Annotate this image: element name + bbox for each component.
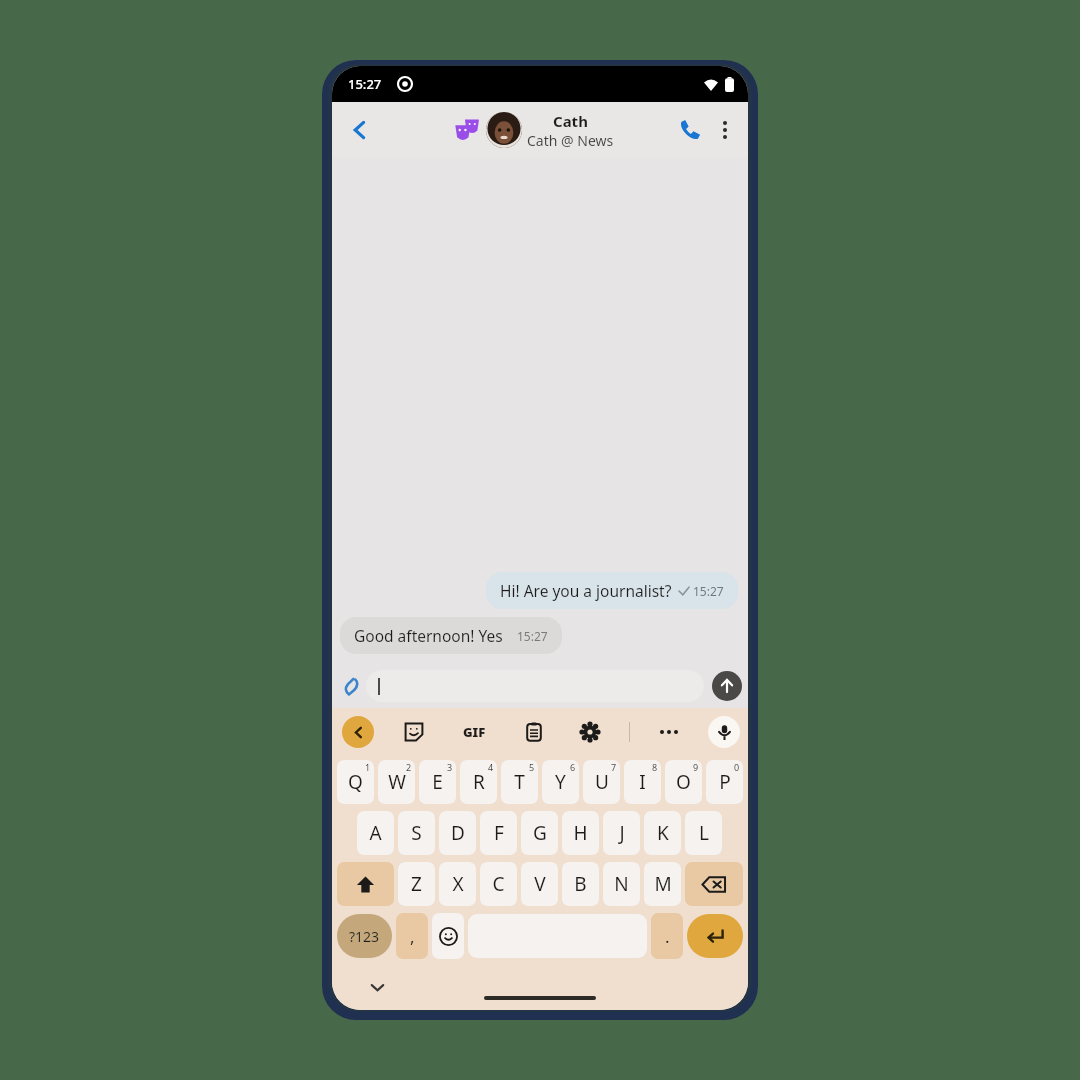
staticText: 9 (693, 761, 699, 773)
staticText: R (473, 769, 485, 795)
staticText: Hi! Are you a journalist? (500, 580, 672, 601)
button[interactable]: Emoji (432, 913, 464, 959)
button[interactable]: Hide keyboard (362, 972, 392, 1002)
staticText: Cath (553, 111, 588, 131)
staticText: J (619, 820, 625, 846)
staticText: H (573, 820, 588, 846)
button[interactable]: GIF (454, 712, 494, 752)
button[interactable]: C (480, 862, 517, 906)
button[interactable]: Theatre masks (454, 117, 480, 143)
button[interactable]: Attach (334, 669, 368, 703)
button[interactable]: W (378, 760, 415, 804)
button[interactable]: Y (542, 760, 579, 804)
button[interactable]: K (644, 811, 681, 855)
staticText: 15:27 (517, 628, 548, 644)
button[interactable]: H (562, 811, 599, 855)
staticText: Z (411, 871, 422, 897)
button[interactable]: F (480, 811, 517, 855)
staticText: W (388, 769, 406, 795)
button[interactable]: Call (672, 112, 708, 148)
button[interactable]: I (624, 760, 661, 804)
button[interactable]: ?123 (337, 914, 392, 958)
button[interactable]: Period (651, 913, 683, 959)
staticText: , (410, 925, 415, 948)
staticText: N (614, 871, 629, 897)
button[interactable]: Send (712, 671, 742, 701)
staticText: E (432, 769, 443, 795)
button[interactable]: Settings (573, 715, 607, 749)
button[interactable]: Profile photo (486, 112, 522, 148)
staticText: O (676, 769, 691, 795)
button[interactable]: B (562, 862, 599, 906)
staticText: D (451, 820, 465, 846)
staticText: L (699, 820, 709, 846)
button[interactable]: A (357, 811, 394, 855)
button[interactable]: Enter (687, 914, 743, 958)
button[interactable]: R (460, 760, 497, 804)
button[interactable]: Z (398, 862, 435, 906)
staticText: 15:27 (693, 583, 724, 599)
button[interactable]: S (398, 811, 435, 855)
button[interactable]: Shift (337, 862, 394, 906)
button[interactable]: M (644, 862, 681, 906)
button[interactable]: Good afternoon! Yes (340, 617, 562, 654)
button[interactable]: E (419, 760, 456, 804)
staticText: 2 (406, 761, 412, 773)
staticText: 15:27 (348, 75, 382, 93)
staticText: K (657, 820, 669, 846)
staticText: 0 (734, 761, 740, 773)
staticText: T (514, 769, 525, 795)
button[interactable]: N (603, 862, 640, 906)
staticText: S (411, 820, 422, 846)
button[interactable]: Space (468, 914, 647, 958)
staticText: X (452, 871, 464, 897)
button[interactable]: Backspace (685, 862, 743, 906)
button[interactable]: Collapse toolbar (342, 716, 374, 748)
button[interactable]: D (439, 811, 476, 855)
button[interactable]: U (583, 760, 620, 804)
button[interactable]: G (521, 811, 558, 855)
button[interactable]: L (685, 811, 722, 855)
button[interactable]: More (652, 715, 686, 749)
button[interactable]: Q (337, 760, 374, 804)
staticText: Cath @ News (527, 131, 614, 150)
staticText: 1 (365, 761, 371, 773)
button[interactable]: Stickers (397, 715, 431, 749)
button[interactable]: Clipboard (517, 715, 551, 749)
staticText: 6 (570, 761, 576, 773)
staticText: P (719, 769, 731, 795)
staticText: G (533, 820, 547, 846)
button[interactable]: P (706, 760, 743, 804)
button[interactable]: Comma (396, 913, 428, 959)
button[interactable]: Cath (527, 111, 614, 150)
staticText: 5 (529, 761, 535, 773)
staticText: 7 (611, 761, 617, 773)
staticText: 8 (652, 761, 658, 773)
button[interactable]: J (603, 811, 640, 855)
staticText: B (574, 871, 587, 897)
staticText: I (639, 769, 646, 795)
button[interactable] (366, 670, 704, 702)
staticText: A (369, 820, 382, 846)
staticText: Q (348, 769, 363, 795)
button[interactable]: Voice input (708, 716, 740, 748)
staticText: 3 (447, 761, 453, 773)
button[interactable]: X (439, 862, 476, 906)
staticText: Good afternoon! Yes (354, 625, 503, 646)
staticText: M (654, 871, 672, 897)
staticText: V (534, 871, 546, 897)
button[interactable]: Back (340, 110, 380, 150)
button[interactable]: T (501, 760, 538, 804)
staticText: U (595, 769, 609, 795)
button[interactable]: More options (708, 113, 742, 147)
button[interactable]: V (521, 862, 558, 906)
button[interactable]: O (665, 760, 702, 804)
staticText: F (494, 820, 504, 846)
staticText: ?123 (349, 927, 380, 946)
staticText: GIF (463, 723, 486, 741)
button[interactable]: Hi! Are you a journalist? (486, 572, 738, 609)
staticText: . (665, 925, 670, 948)
staticText: Y (555, 769, 566, 795)
staticText: 4 (488, 761, 494, 773)
staticText: C (492, 871, 505, 897)
